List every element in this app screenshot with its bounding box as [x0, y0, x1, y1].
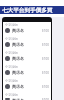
- staticText: 七大平台到手價多買: [2, 7, 53, 14]
- staticText: $100: [42, 71, 49, 75]
- button[interactable]: 商店名: [5, 28, 49, 33]
- button[interactable]: 七大平台到手價多買: [0, 6, 64, 14]
- staticText: 商店名: [12, 84, 24, 89]
- button[interactable]: 商店名: [5, 98, 49, 100]
- staticText: 商店名: [12, 28, 24, 33]
- button[interactable]: 商店名: [5, 84, 49, 89]
- staticText: 商店名: [12, 56, 24, 61]
- staticText: 商店名: [12, 98, 24, 100]
- staticText: 商店名: [12, 70, 24, 75]
- staticText: 小字說明: [5, 65, 18, 69]
- staticText: 小字說明: [5, 79, 18, 83]
- button[interactable]: 商店名: [5, 70, 49, 75]
- staticText: $100: [42, 98, 49, 100]
- staticText: $100: [42, 57, 49, 61]
- button[interactable]: 商店名: [5, 42, 49, 47]
- staticText: $100: [42, 29, 49, 33]
- staticText: 小字說明: [5, 51, 18, 55]
- staticText: 商店名: [12, 42, 24, 47]
- staticText: 小字說明: [5, 93, 18, 97]
- staticText: 小字說明: [5, 37, 18, 41]
- staticText: $100: [42, 43, 49, 47]
- staticText: $100: [42, 85, 49, 89]
- staticText: 小字說明: [5, 23, 18, 27]
- button[interactable]: 商店名: [5, 56, 49, 61]
